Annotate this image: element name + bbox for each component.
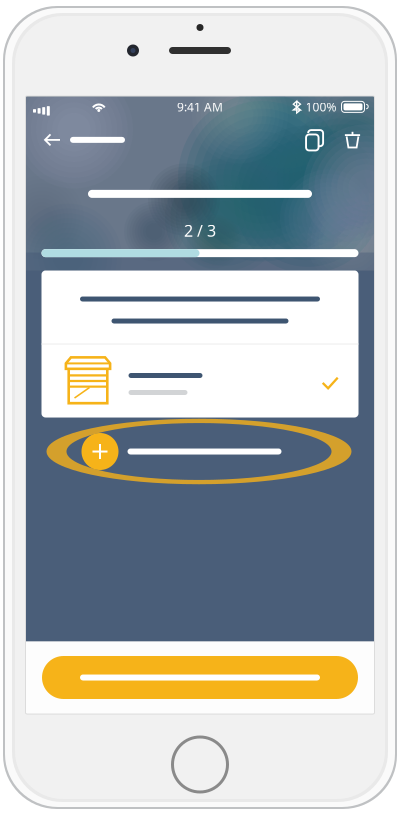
staticText: 100% xyxy=(305,99,336,115)
button[interactable] xyxy=(42,656,358,699)
staticText: 2 / 3 xyxy=(184,220,216,241)
button[interactable]: Delete xyxy=(334,118,371,162)
button[interactable] xyxy=(26,118,135,162)
button[interactable] xyxy=(41,344,358,417)
button[interactable] xyxy=(81,423,318,479)
staticText: 9:41 AM xyxy=(177,99,223,115)
button[interactable]: Duplicate xyxy=(297,118,334,162)
